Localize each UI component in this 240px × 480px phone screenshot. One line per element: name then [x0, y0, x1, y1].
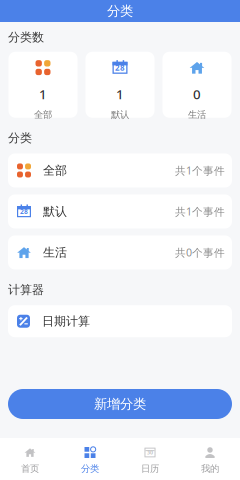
staticText: 共1个事件: [175, 204, 225, 219]
button[interactable]: 30: [120, 438, 180, 480]
button[interactable]: 28: [85, 52, 154, 118]
staticText: 分类: [107, 3, 133, 19]
staticText: 默认: [111, 109, 129, 120]
staticText: 全部: [34, 109, 52, 120]
staticText: 日历: [141, 463, 159, 474]
staticText: 28: [20, 207, 28, 216]
staticText: 30: [147, 449, 153, 456]
staticText: 生活: [43, 245, 67, 260]
staticText: 共0个事件: [175, 245, 225, 260]
staticText: 首页: [21, 463, 39, 474]
button[interactable]: 0: [162, 52, 231, 118]
button[interactable]: 新增分类: [8, 389, 232, 419]
button[interactable]: 分类: [60, 438, 120, 480]
button[interactable]: 我的: [180, 438, 240, 480]
staticText: 分类: [8, 131, 32, 145]
button[interactable]: 全部: [8, 153, 232, 187]
staticText: 分类数: [8, 30, 44, 45]
button[interactable]: 28: [8, 194, 232, 228]
button[interactable]: 1: [8, 52, 77, 118]
staticText: 计算器: [8, 282, 44, 297]
staticText: 1: [39, 85, 47, 103]
staticText: 28: [115, 62, 125, 73]
button[interactable]: 首页: [0, 438, 60, 480]
staticText: 日期计算: [42, 314, 90, 328]
staticText: 生活: [188, 109, 206, 120]
staticText: 1: [116, 85, 124, 103]
staticText: 全部: [43, 163, 67, 178]
staticText: 共1个事件: [175, 163, 225, 178]
staticText: 0: [193, 85, 201, 103]
staticText: 默认: [43, 204, 67, 219]
staticText: 分类: [81, 463, 99, 474]
button[interactable]: 生活: [8, 235, 232, 269]
staticText: 新增分类: [94, 396, 146, 412]
staticText: 我的: [201, 463, 219, 474]
button[interactable]: 日期计算: [8, 305, 232, 337]
